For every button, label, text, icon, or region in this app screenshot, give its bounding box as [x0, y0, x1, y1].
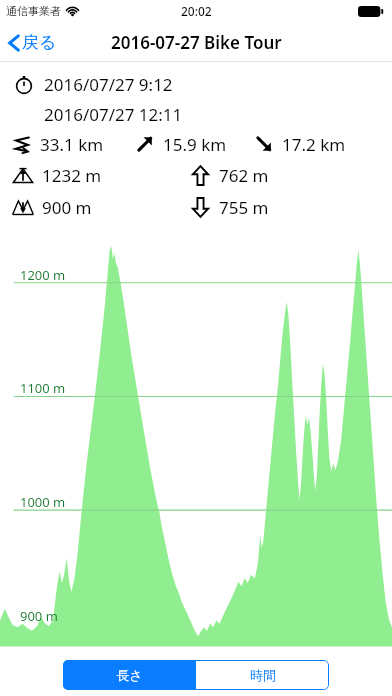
staticText: 33.1 km: [40, 133, 104, 156]
other: Minimum elevation: [12, 196, 34, 218]
staticText: 時間: [250, 667, 276, 683]
staticText: 1000 m: [20, 493, 66, 511]
button[interactable]: 戻る: [0, 27, 69, 58]
staticText: 2016-07-27 Bike Tour: [111, 31, 282, 54]
staticText: 1200 m: [20, 266, 66, 284]
staticText: 2016/07/27 9:12: [44, 73, 173, 96]
staticText: 戻る: [22, 32, 57, 53]
other: Total distance: [12, 134, 32, 154]
other: Total ascent: [192, 165, 209, 186]
other: Duration: [14, 74, 34, 94]
other: Uphill distance: [136, 135, 154, 153]
staticText: 17.2 km: [282, 133, 346, 156]
staticText: 900 m: [20, 607, 58, 625]
staticText: 900 m: [42, 196, 92, 219]
staticText: 1232 m: [42, 164, 102, 187]
staticText: 762 m: [219, 164, 269, 187]
other: Maximum elevation: [12, 164, 34, 186]
staticText: 2016/07/27 12:11: [44, 103, 183, 126]
other: Downhill distance: [255, 135, 273, 153]
button[interactable]: 時間: [196, 660, 329, 690]
staticText: 1100 m: [20, 379, 66, 397]
other: Total descent: [192, 197, 209, 218]
staticText: 長さ: [116, 667, 143, 683]
button[interactable]: 長さ: [63, 660, 195, 690]
staticText: 20:02: [181, 3, 212, 19]
staticText: 755 m: [219, 196, 269, 219]
staticText: 通信事業者: [6, 4, 61, 18]
staticText: 15.9 km: [163, 133, 227, 156]
